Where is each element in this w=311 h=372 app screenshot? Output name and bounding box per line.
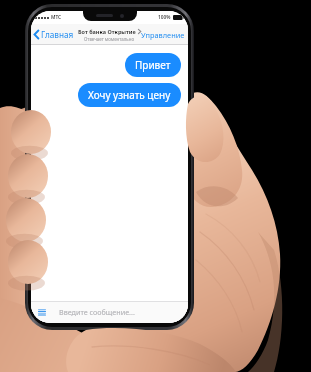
button[interactable]: Хочу узнать цену [78, 83, 181, 107]
button[interactable]: Главная [31, 26, 78, 43]
staticText: Привет [135, 58, 171, 72]
staticText: МТС [51, 14, 62, 21]
staticText: Отвечает моментально [84, 36, 135, 42]
button[interactable]: Введите сообщение... [59, 307, 183, 317]
button[interactable]: Привет [125, 53, 181, 77]
button[interactable]: Управление [138, 27, 188, 43]
staticText: 100% [158, 14, 171, 21]
staticText: Бот банка Открытие [78, 28, 136, 35]
button[interactable]: Menu [36, 307, 48, 318]
staticText: Введите сообщение... [59, 307, 135, 317]
staticText: Управление [141, 30, 185, 40]
staticText: Главная [41, 29, 74, 40]
staticText: Хочу узнать цену [88, 88, 171, 102]
button[interactable]: Бот банка Открытие [76, 28, 143, 42]
